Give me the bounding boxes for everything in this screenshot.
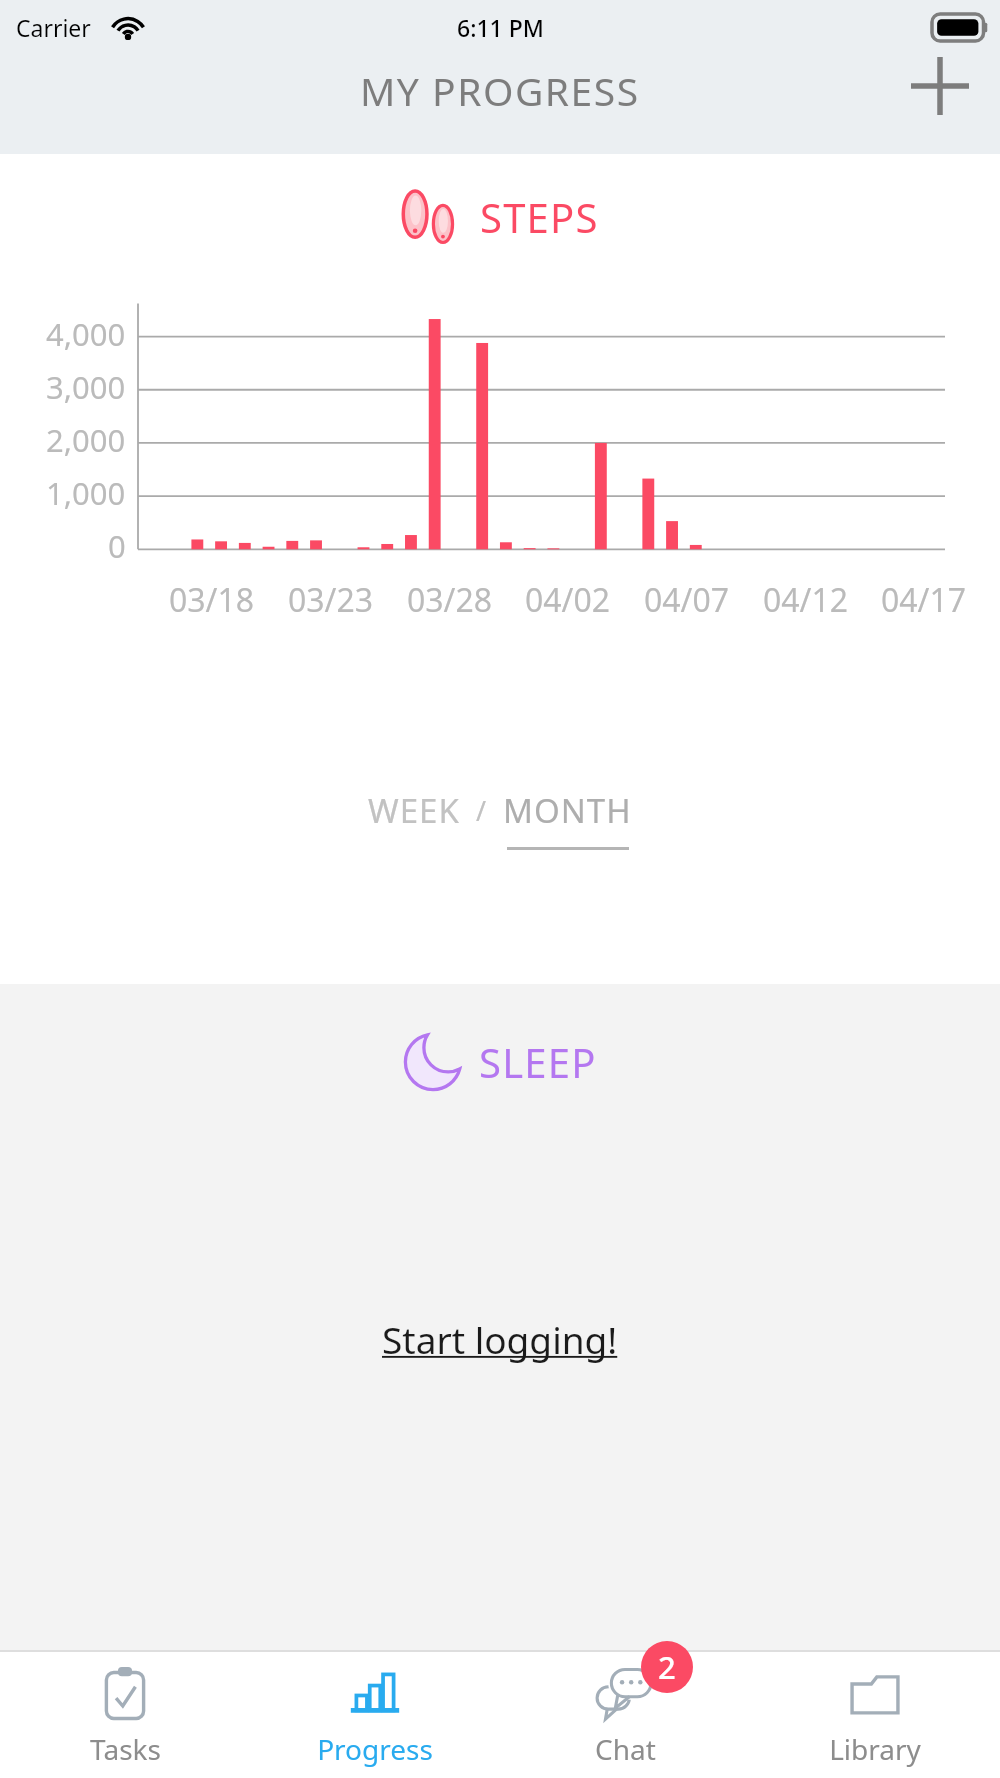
staticText: WEEK (368, 788, 460, 833)
staticText: 04/17 (881, 578, 967, 622)
staticText: 3,000 (46, 366, 126, 408)
staticText: STEPS (480, 190, 599, 244)
staticText: 2 (658, 1646, 676, 1688)
staticText: 2,000 (46, 419, 126, 461)
staticText: SLEEP (479, 1035, 597, 1089)
staticText: 04/07 (644, 578, 730, 622)
staticText: 1,000 (46, 472, 126, 514)
staticText: 04/12 (763, 578, 849, 622)
staticText: 0 (108, 525, 126, 567)
button[interactable]: MONTH (495, 784, 640, 854)
staticText: MY PROGRESS (360, 64, 640, 117)
staticText: Chat (595, 1730, 656, 1768)
staticText: Start logging! (382, 1314, 618, 1364)
staticText: 03/18 (169, 578, 255, 622)
staticText: MONTH (503, 788, 632, 833)
button[interactable]: Library (750, 1652, 1000, 1778)
button[interactable]: 2 (500, 1652, 750, 1778)
staticText: 04/02 (525, 578, 611, 622)
button[interactable]: Add entry (898, 44, 982, 128)
button[interactable]: WEEK (360, 784, 468, 837)
button[interactable]: Progress (250, 1652, 500, 1778)
staticText: Progress (317, 1730, 433, 1768)
button[interactable]: Start logging! (370, 1302, 630, 1376)
staticText: / (476, 792, 487, 829)
staticText: 03/23 (288, 578, 374, 622)
staticText: 03/28 (407, 578, 493, 622)
staticText: Library (829, 1730, 921, 1768)
staticText: Carrier (16, 12, 91, 43)
staticText: 6:11 PM (457, 12, 544, 43)
staticText: 4,000 (46, 313, 126, 355)
staticText: Tasks (90, 1730, 161, 1768)
button[interactable]: Tasks (0, 1652, 250, 1778)
